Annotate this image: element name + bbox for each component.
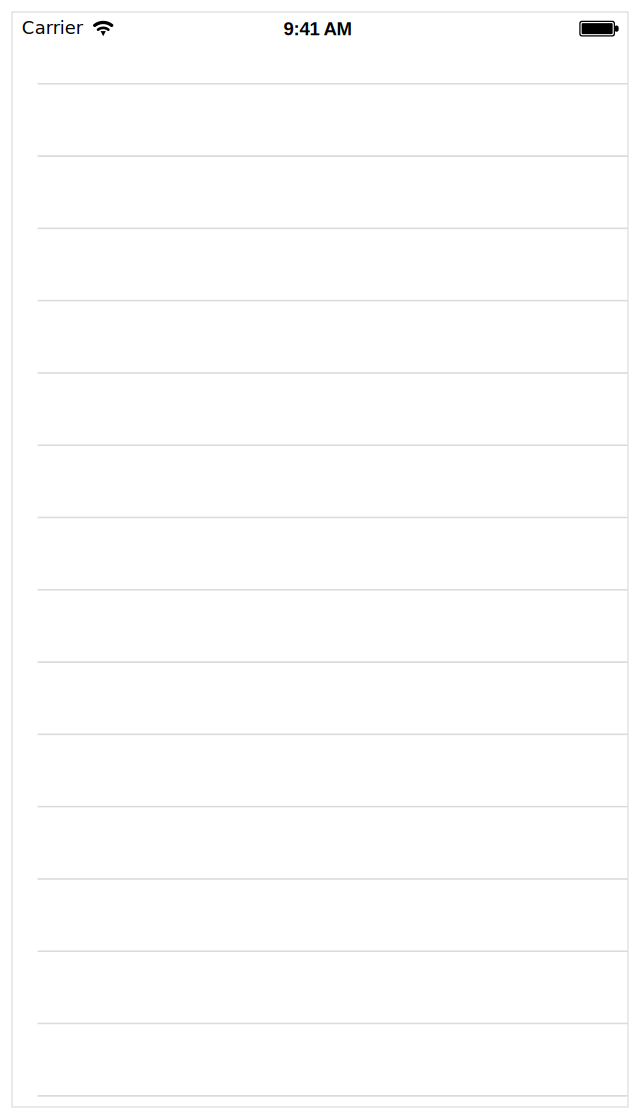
button[interactable]: Row 11	[12, 735, 628, 808]
button[interactable]: Row 10	[12, 663, 628, 735]
button[interactable]: Row 15	[12, 1024, 628, 1097]
button[interactable]: Row 9	[12, 591, 628, 663]
button[interactable]: Row 8	[12, 518, 628, 591]
button[interactable]: Row 13	[12, 880, 628, 952]
button[interactable]: Row 3	[12, 157, 628, 229]
button[interactable]: Row 12	[12, 808, 628, 880]
button[interactable]: Row 5	[12, 302, 628, 374]
staticText: 9:41 AM	[284, 18, 353, 39]
button[interactable]: Row 14	[12, 952, 628, 1024]
staticText: Carrier	[22, 17, 83, 38]
button[interactable]: Row 4	[12, 229, 628, 302]
button[interactable]: Row 1	[12, 12, 628, 85]
button[interactable]: Row 6	[12, 374, 628, 446]
button[interactable]: Row 2	[12, 85, 628, 157]
button[interactable]: Row 7	[12, 446, 628, 518]
